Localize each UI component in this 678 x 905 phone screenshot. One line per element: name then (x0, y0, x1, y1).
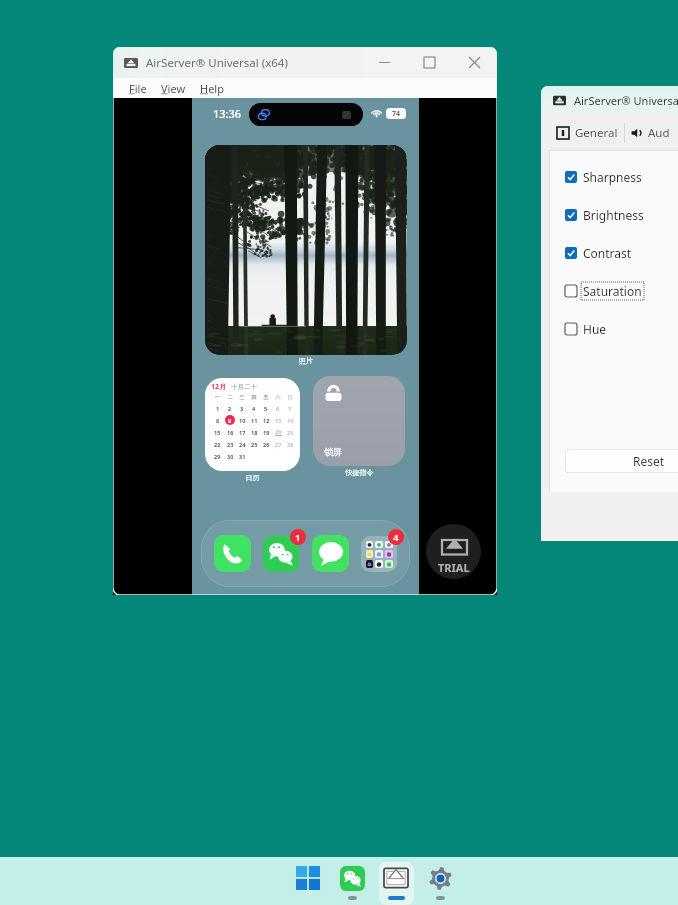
staticText: 26 (263, 441, 270, 448)
button[interactable]: WeChat (263, 536, 299, 572)
staticText: Hue (583, 321, 607, 337)
staticText: 日 (284, 394, 296, 401)
button[interactable]: Help (193, 80, 231, 97)
staticText: 五 (260, 394, 272, 401)
staticText: 1 (295, 531, 301, 544)
staticText: 18 (251, 429, 258, 436)
staticText: 22 (214, 441, 221, 448)
button[interactable]: Sharpness (549, 158, 678, 196)
staticText: 17 (239, 429, 246, 436)
staticText: 12 (263, 417, 270, 424)
staticText: 1 (216, 405, 220, 412)
staticText: 5 (264, 405, 268, 412)
button[interactable]: Minimize (362, 47, 407, 78)
staticText: 21 (287, 429, 294, 436)
staticText: AirServer® Universal (x64) (146, 55, 288, 71)
button[interactable]: General (557, 125, 618, 141)
staticText: 三 (236, 394, 248, 401)
button[interactable]: WeChat (340, 866, 365, 891)
staticText: 一 (211, 394, 224, 401)
staticText: File (129, 81, 147, 96)
staticText: Aud (648, 125, 670, 141)
staticText: 3 (240, 405, 244, 412)
staticText: 25 (251, 441, 258, 448)
staticText: 十月二十 (231, 383, 257, 391)
staticText: TRIAL (438, 560, 470, 575)
staticText: 16 (227, 429, 234, 436)
staticText: 31 (239, 453, 246, 460)
staticText: 15 (214, 429, 221, 436)
staticText: 24 (239, 441, 246, 448)
staticText: 4 (252, 405, 256, 412)
staticText: 13:36 (213, 106, 242, 121)
staticText: 四 (248, 394, 260, 401)
staticText: 27 (275, 441, 282, 448)
staticText: Contrast (583, 245, 632, 261)
staticText: 14 (287, 417, 294, 424)
staticText: AirServer® Universa (574, 93, 678, 108)
staticText: 74 (392, 109, 401, 119)
staticText: 19 (263, 429, 270, 436)
button[interactable]: Brightness (549, 196, 678, 234)
button[interactable]: Aud (631, 125, 670, 141)
button[interactable]: Hue (549, 310, 678, 348)
staticText: 12月 (211, 382, 227, 392)
button[interactable]: App folder (361, 536, 397, 572)
button[interactable]: Contrast (549, 234, 678, 272)
staticText: 10 (239, 417, 246, 424)
staticText: 7 (288, 405, 292, 412)
button[interactable]: Maximize (407, 47, 452, 78)
button[interactable]: Photos widget (205, 145, 407, 355)
staticText: 6 (276, 405, 280, 412)
button[interactable]: Reset (565, 449, 678, 473)
staticText: Reset (633, 453, 665, 469)
staticText: 13 (275, 417, 282, 424)
button[interactable]: Start (286, 857, 330, 905)
staticText: 30 (227, 453, 234, 460)
button[interactable]: Saturation (549, 272, 678, 310)
staticText: 23 (227, 441, 234, 448)
staticText: 29 (214, 453, 221, 460)
staticText: 28 (287, 441, 294, 448)
staticText: Sharpness (583, 169, 642, 185)
button[interactable]: WeChat (330, 857, 374, 905)
button[interactable]: Trial watermark (426, 524, 481, 579)
button[interactable]: Calendar widget (205, 378, 300, 471)
staticText: 8 (216, 417, 220, 424)
button[interactable]: Shortcuts widget (313, 376, 405, 466)
staticText: 4 (393, 531, 399, 544)
button[interactable]: Close (452, 47, 497, 78)
staticText: View (161, 81, 186, 96)
staticText: 日历 (205, 473, 300, 482)
button[interactable]: File (122, 80, 154, 97)
staticText: 快捷指令 (313, 468, 406, 477)
button[interactable]: AirServer (374, 857, 418, 905)
button[interactable]: Settings (418, 857, 462, 905)
staticText: 锁屏 (324, 446, 342, 457)
staticText: 二 (224, 394, 236, 401)
staticText: General (575, 125, 618, 141)
button[interactable]: Messages (312, 535, 349, 572)
staticText: 照片 (205, 356, 407, 365)
staticText: 11 (251, 417, 258, 424)
staticText: 六 (272, 394, 284, 401)
staticText: 9 (228, 417, 232, 424)
staticText: Brightness (583, 207, 644, 223)
staticText: 2 (228, 405, 232, 412)
staticText: Saturation (583, 283, 642, 299)
button[interactable]: Phone (214, 535, 251, 572)
staticText: 20 (275, 428, 282, 435)
button[interactable]: View (154, 80, 193, 97)
staticText: Help (200, 81, 224, 96)
